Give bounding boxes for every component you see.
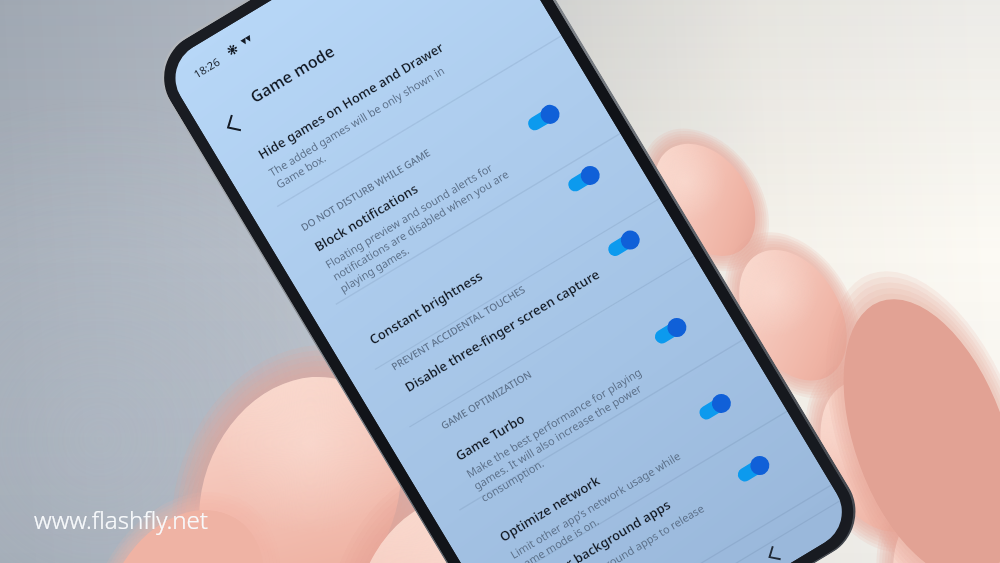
button[interactable]: Toggle setting <box>695 390 734 424</box>
button[interactable]: Toggle setting <box>604 227 643 261</box>
staticText: Floating preview and sound alerts for no… <box>322 154 519 296</box>
button[interactable]: Toggle setting <box>734 452 773 486</box>
button[interactable]: Toggle setting <box>651 314 690 348</box>
staticText: Optimize network <box>496 471 604 546</box>
staticText: Make the best performance for playing ga… <box>463 364 659 505</box>
staticText: Disable three-finger screen capture <box>401 265 603 396</box>
staticText: Hide games on Home and Drawer <box>255 38 447 163</box>
button[interactable]: Game Turbo <box>438 308 690 477</box>
staticText: Clear background apps to release memory. <box>550 500 714 563</box>
staticText: PREVENT ACCIDENTAL TOUCHES <box>389 282 528 373</box>
button[interactable]: Back <box>208 100 257 150</box>
button[interactable]: Toggle setting <box>524 101 563 135</box>
staticText: Game Turbo <box>452 409 528 465</box>
button[interactable]: Disable three-finger screen capture <box>387 239 640 408</box>
button[interactable]: Block notifications <box>297 98 549 268</box>
staticText: DO NOT DISTURB WHILE GAME <box>298 145 433 234</box>
staticText: The added games will be only shown in Ga… <box>266 62 455 192</box>
staticText: www.flashfly.net <box>34 503 208 536</box>
staticText: Constant brightness <box>366 267 486 348</box>
button[interactable]: Clear background apps <box>525 429 777 563</box>
staticText: GAME OPTIMIZATION <box>438 367 534 432</box>
staticText: Limit other app’s network usage while ga… <box>507 448 690 563</box>
staticText: Clear background apps <box>539 495 674 563</box>
staticText: Game mode <box>246 40 339 108</box>
button[interactable]: Hide games on Home and Drawer <box>241 6 493 175</box>
button[interactable]: Toggle setting <box>564 162 603 196</box>
button[interactable]: Constant brightness <box>352 191 604 361</box>
button[interactable]: Back <box>749 530 797 563</box>
button[interactable]: Optimize network <box>482 389 734 558</box>
staticText: 18:26 <box>191 54 223 81</box>
staticText: Block notifications <box>311 179 421 255</box>
